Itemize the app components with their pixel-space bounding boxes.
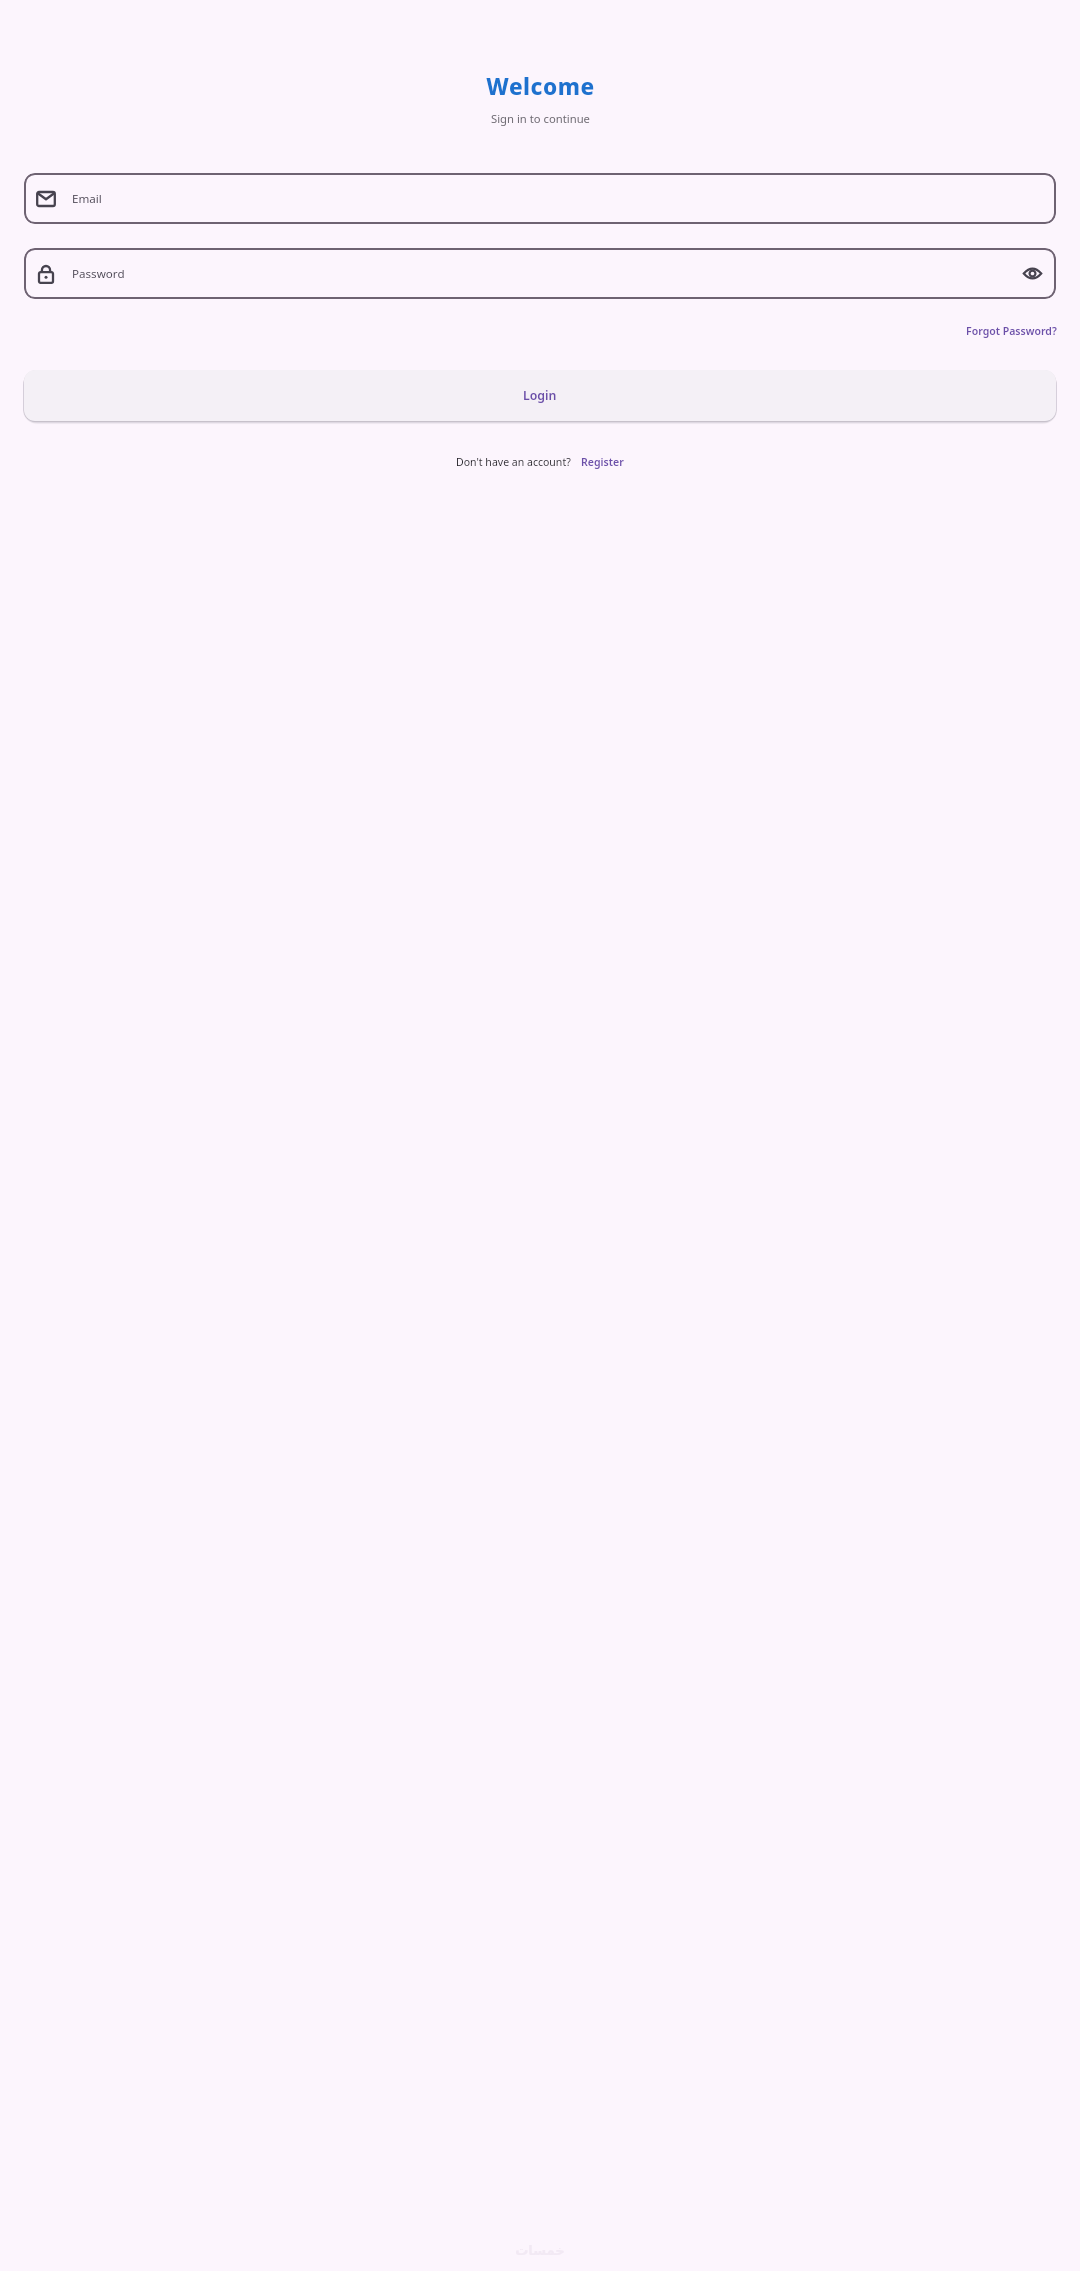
staticText: Don't have an account? xyxy=(456,455,571,469)
button[interactable]: Register xyxy=(580,454,625,470)
staticText: خمسات xyxy=(515,2243,565,2258)
staticText: Email xyxy=(72,191,1044,207)
button[interactable]: Email xyxy=(24,173,1056,224)
button[interactable]: Password xyxy=(24,248,1056,299)
staticText: Register xyxy=(581,455,624,469)
button[interactable]: Forgot Password? xyxy=(964,322,1059,340)
button[interactable]: Login xyxy=(24,370,1056,421)
staticText: Login xyxy=(523,387,557,404)
staticText: Sign in to continue xyxy=(491,111,590,126)
staticText: Welcome xyxy=(486,71,595,102)
staticText: Password xyxy=(72,266,1021,282)
staticText: Forgot Password? xyxy=(966,324,1057,338)
button[interactable]: Show password xyxy=(1021,262,1044,285)
